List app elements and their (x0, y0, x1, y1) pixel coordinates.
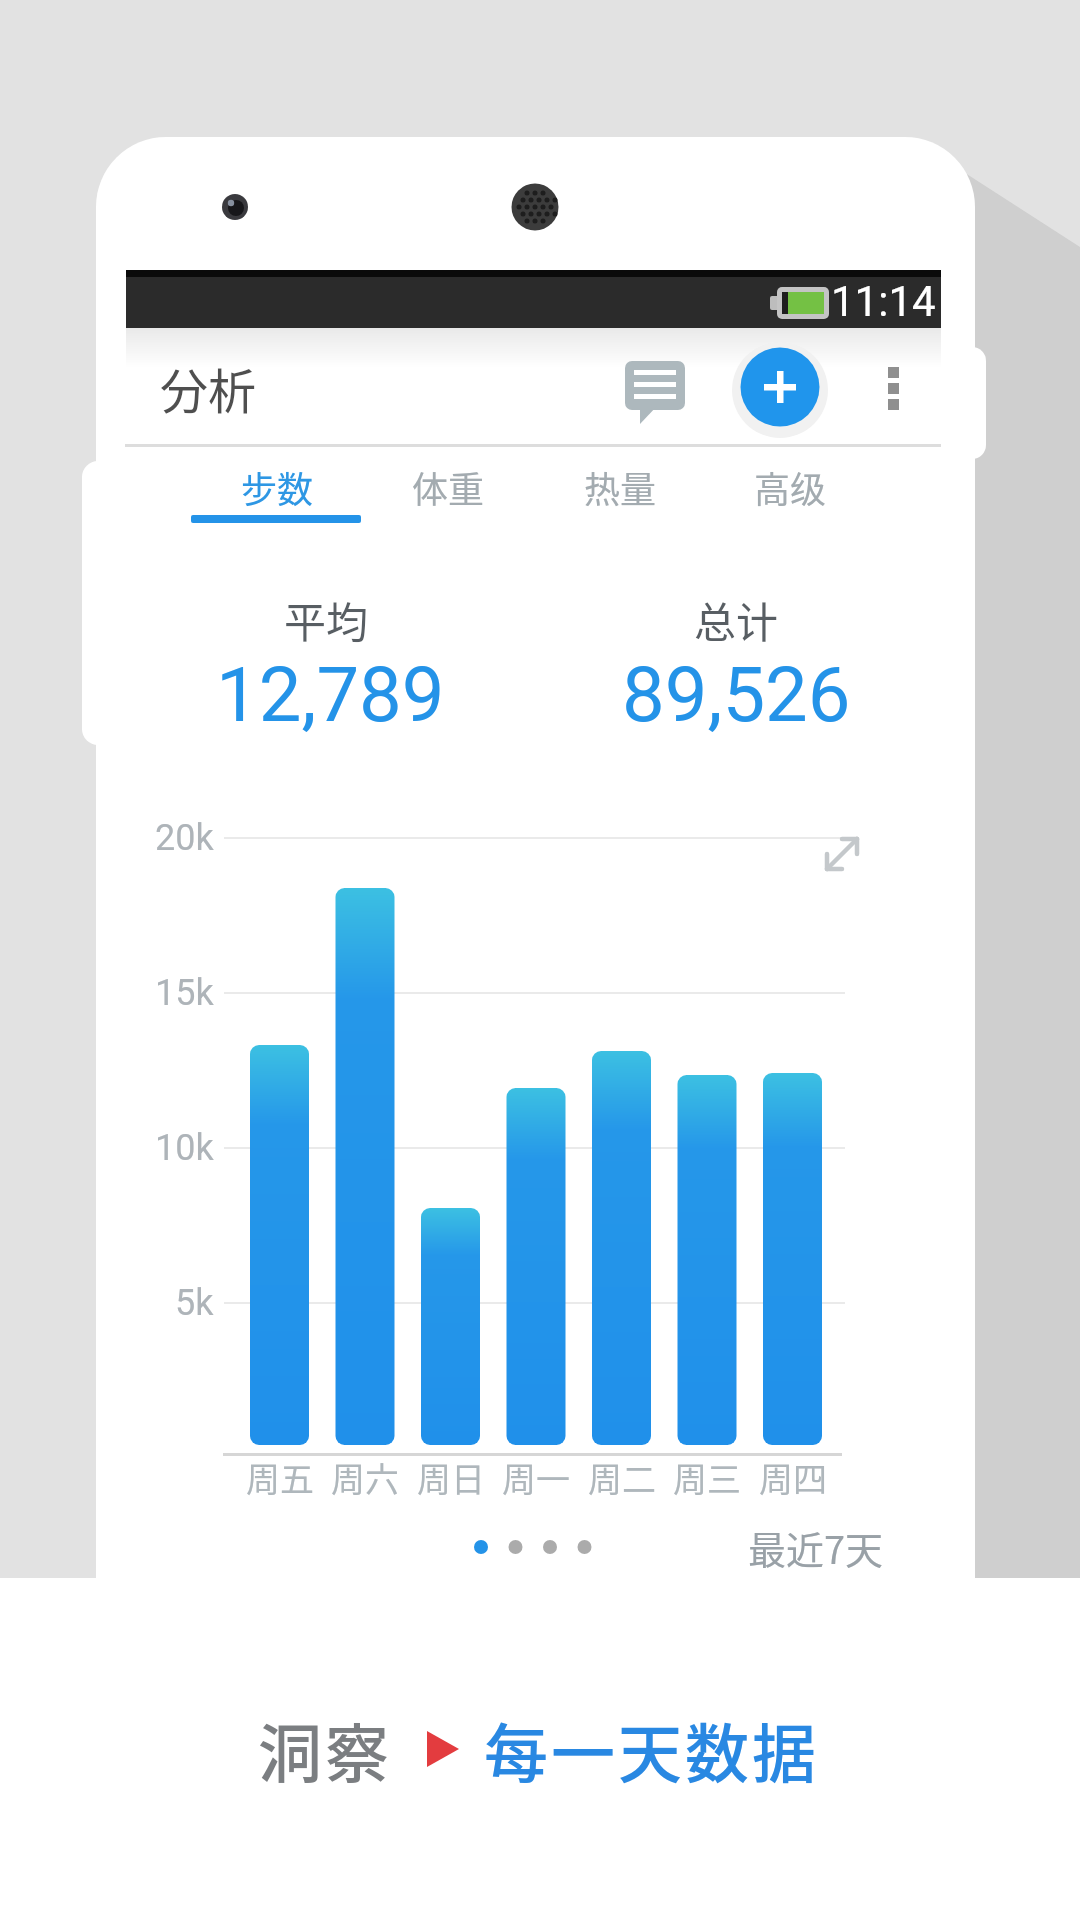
staticText: 体重 (412, 461, 485, 513)
staticText: 分析 (160, 353, 257, 423)
staticText: 周四 (759, 1453, 827, 1502)
staticText: 最近7天 (748, 1520, 884, 1575)
staticText: 20k (155, 817, 214, 859)
staticText: 周五 (246, 1453, 314, 1502)
staticText: 周一 (502, 1453, 570, 1502)
staticText: 热量 (584, 461, 657, 513)
staticText: 周三 (673, 1453, 741, 1502)
staticText: 5k (175, 1282, 214, 1324)
staticText: 平均 (284, 589, 369, 650)
staticText: 10k (155, 1127, 214, 1169)
staticText: 每一天数据 (484, 1703, 819, 1796)
staticText: 周二 (588, 1453, 656, 1502)
staticText: 周六 (331, 1453, 399, 1502)
staticText: 高级 (754, 461, 827, 513)
staticText: 11:14 (831, 277, 936, 326)
staticText: 周日 (417, 1453, 485, 1502)
staticText: 89,526 (622, 650, 851, 739)
staticText: 总计 (694, 589, 779, 650)
staticText: 15k (155, 972, 214, 1014)
staticText: 洞察 (258, 1703, 392, 1796)
staticText: 12,789 (216, 650, 445, 739)
staticText: 步数 (241, 461, 314, 513)
